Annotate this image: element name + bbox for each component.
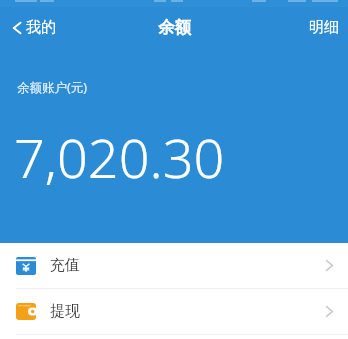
button[interactable]: Withdraw <box>0 289 348 334</box>
button[interactable]: 我的 <box>0 12 66 43</box>
staticText: 明细 <box>309 18 339 37</box>
button[interactable]: 明细 <box>300 12 348 43</box>
staticText: 余额账户(元) <box>17 79 88 96</box>
other: Withdraw <box>16 303 36 320</box>
staticText: 7,020.30 <box>14 120 225 194</box>
staticText: 提现 <box>50 302 80 321</box>
staticText: 我的 <box>26 18 56 37</box>
staticText: 余额 <box>158 17 191 38</box>
button[interactable]: Recharge <box>0 243 348 288</box>
staticText: 充值 <box>50 256 80 275</box>
other: Recharge <box>16 257 36 275</box>
